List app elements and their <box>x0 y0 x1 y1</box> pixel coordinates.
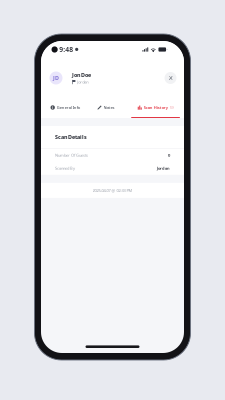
button[interactable]: Close <box>164 72 176 84</box>
staticText: Scanned By <box>55 166 75 171</box>
staticText: 9:48 <box>59 45 73 54</box>
staticText: 2025-04-07 @ 02:33 PM <box>92 188 132 193</box>
staticText: Scan History <box>144 105 168 110</box>
staticText: Scan Details <box>55 133 87 141</box>
staticText: Notes <box>103 105 114 110</box>
staticText: 0 <box>168 152 170 158</box>
staticText: Jon Doe <box>72 71 91 78</box>
staticText: General Info <box>57 105 80 110</box>
staticText: 59 <box>169 105 173 110</box>
staticText: Jordan <box>77 79 88 85</box>
button[interactable]: Notes <box>96 98 115 118</box>
staticText: Number Of Guests <box>55 152 88 158</box>
staticText: JD <box>53 74 59 82</box>
button[interactable]: General Info <box>49 98 81 118</box>
staticText: Jordan <box>157 166 170 171</box>
button[interactable]: Scan History <box>131 98 180 118</box>
